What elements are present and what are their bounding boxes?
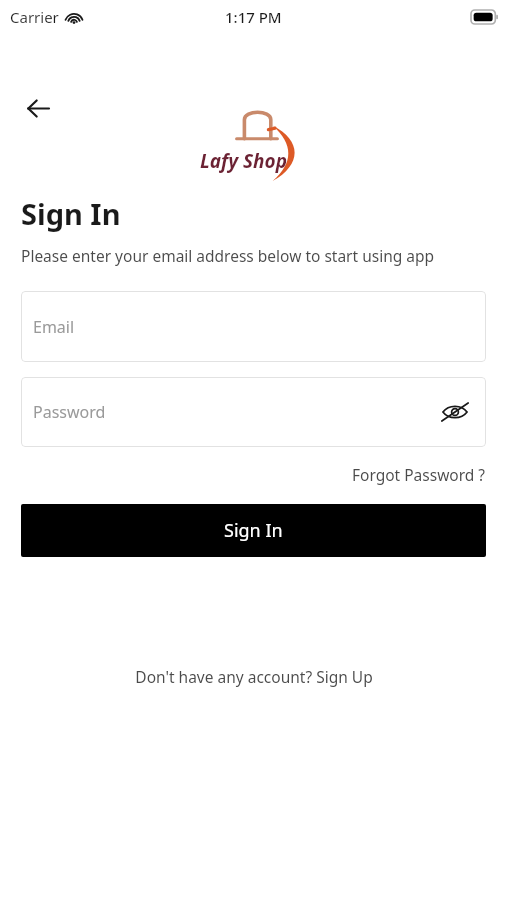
staticText: Password (33, 401, 106, 423)
button[interactable]: Email (21, 291, 486, 362)
staticText: Lafy Shop (200, 148, 287, 174)
button[interactable]: Show password (436, 393, 474, 431)
staticText: Don't have any account? Sign Up (135, 666, 373, 687)
staticText: Email (33, 316, 75, 338)
button[interactable]: Don't have any account? Sign Up (127, 662, 381, 691)
staticText: Sign In (21, 194, 121, 233)
button[interactable]: Password (21, 377, 486, 447)
staticText: Please enter your email address below to… (21, 245, 435, 266)
staticText: Carrier (10, 7, 59, 27)
button[interactable]: Sign In (21, 504, 486, 557)
staticText: Sign In (224, 518, 283, 543)
staticText: 1:17 PM (225, 7, 282, 27)
button[interactable]: Back (18, 88, 58, 128)
staticText: Forgot Password ? (352, 464, 486, 485)
button[interactable]: Forgot Password ? (352, 461, 486, 488)
